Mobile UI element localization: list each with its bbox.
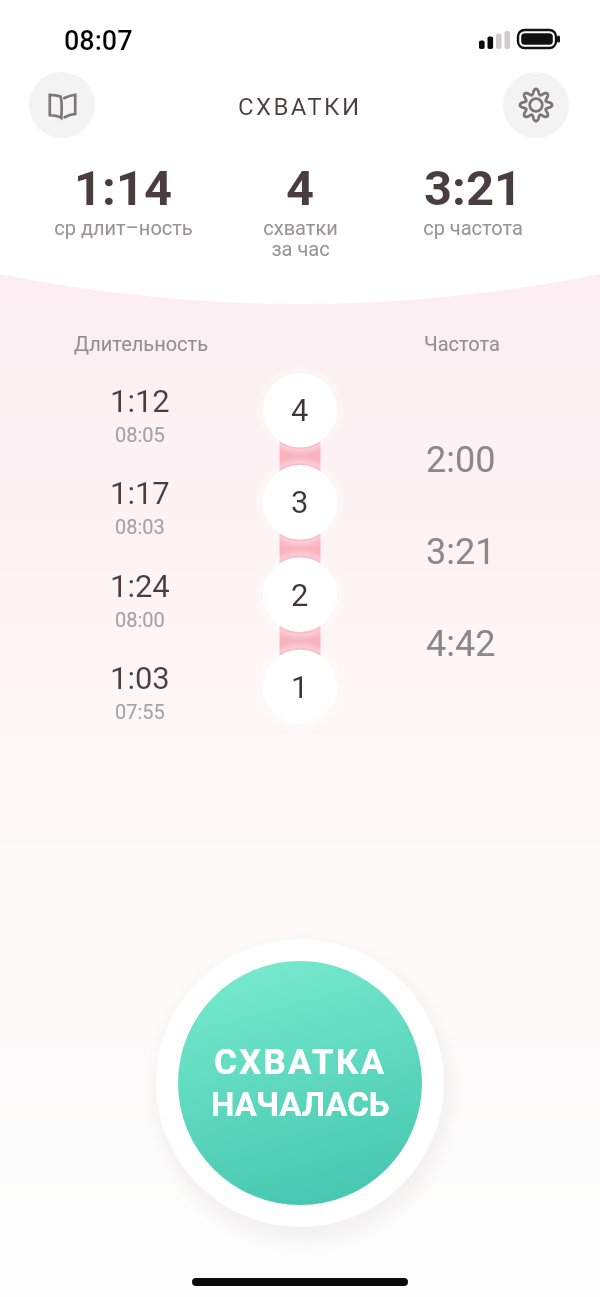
staticText: Длительность <box>74 332 209 355</box>
staticText: 3:21 <box>426 531 496 573</box>
staticText: 1:24 <box>110 568 170 604</box>
button[interactable] <box>0 370 600 450</box>
staticText: 4 <box>286 160 315 217</box>
staticText: 3:21 <box>424 160 523 217</box>
staticText: 08:03 <box>115 515 165 538</box>
staticText: 08:00 <box>115 608 165 631</box>
staticText: схватки за час <box>263 216 338 261</box>
button[interactable] <box>0 555 600 635</box>
button[interactable] <box>0 647 600 727</box>
staticText: 1:17 <box>110 475 170 511</box>
button[interactable]: Guide <box>29 72 95 138</box>
staticText: 4 <box>291 392 309 428</box>
staticText: 2 <box>291 577 309 613</box>
staticText: 08:05 <box>115 423 165 446</box>
staticText: СХВАТКА <box>214 1042 387 1083</box>
button[interactable]: СХВАТКА <box>178 961 422 1205</box>
staticText: 3 <box>291 484 309 520</box>
staticText: НАЧАЛАСЬ <box>211 1085 390 1124</box>
staticText: 2:00 <box>426 439 496 481</box>
staticText: Частота <box>424 332 500 355</box>
staticText: 1:14 <box>74 160 173 217</box>
button[interactable] <box>0 462 600 542</box>
staticText: СХВАТКИ <box>238 93 362 121</box>
staticText: 1:03 <box>110 660 170 696</box>
staticText: ср частота <box>423 216 523 239</box>
staticText: 4:42 <box>426 623 496 665</box>
button[interactable]: Settings <box>503 72 569 138</box>
staticText: 1 <box>291 669 309 705</box>
staticText: 08:07 <box>64 25 133 57</box>
staticText: 07:55 <box>115 700 165 723</box>
staticText: 1:12 <box>110 383 170 419</box>
staticText: ср длит–ность <box>54 216 193 239</box>
